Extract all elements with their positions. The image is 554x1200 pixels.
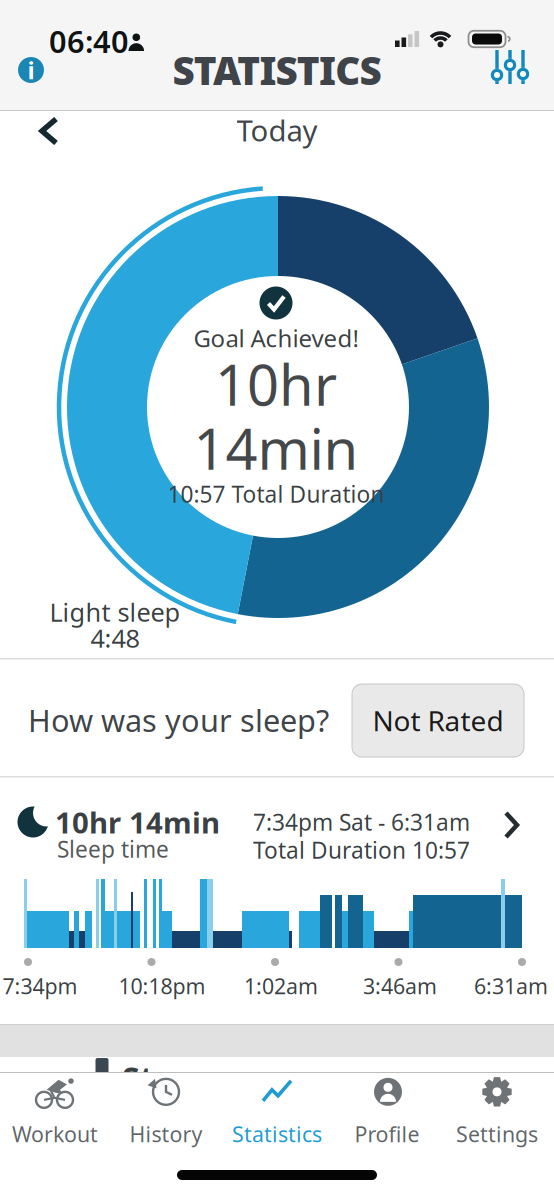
staticText: Sleep time (57, 834, 169, 864)
button[interactable]: History (113, 1078, 219, 1146)
button[interactable]: Statistics (224, 1078, 330, 1146)
button[interactable]: Previous day (27, 109, 71, 153)
staticText: Settings (456, 1120, 538, 1148)
staticText: History (129, 1120, 202, 1148)
staticText: 06:40 (49, 21, 129, 61)
staticText: Total Duration 10:57 (253, 835, 470, 865)
staticText: 14min (193, 411, 358, 485)
staticText: 6:31am (474, 972, 548, 1000)
button[interactable]: Workout (2, 1078, 108, 1146)
staticText: Profile (354, 1120, 419, 1148)
staticText: 7:34pm (2, 972, 77, 1000)
button[interactable]: Not Rated (352, 684, 524, 757)
staticText: 3:46am (363, 972, 437, 1000)
staticText: Workout (12, 1120, 98, 1148)
button[interactable]: 10hr 14min (0, 779, 554, 1025)
button[interactable]: Settings (444, 1078, 550, 1146)
staticText: 10hr (215, 347, 337, 421)
staticText: Statistics (232, 1120, 322, 1148)
staticText: 1:02am (244, 972, 318, 1000)
staticText: 10hr 14min (55, 802, 220, 841)
staticText: Goal Achieved! (193, 322, 358, 354)
staticText: STATISTICS (173, 44, 381, 96)
button[interactable]: Profile (334, 1078, 440, 1146)
staticText: How was your sleep? (28, 700, 329, 740)
button[interactable]: Filter (488, 45, 532, 89)
staticText: Today (236, 110, 317, 149)
button[interactable]: Info (14, 53, 48, 87)
staticText: 10:57 Total Duration (167, 479, 384, 509)
staticText: Stress (122, 1057, 219, 1099)
staticText: 4:48 (90, 621, 139, 655)
staticText: i (27, 54, 34, 86)
staticText: Not Rated (372, 702, 503, 739)
staticText: 7:34pm Sat - 6:31am (253, 807, 470, 837)
staticText: 10:18pm (118, 972, 205, 1000)
staticText: Light sleep (49, 595, 180, 629)
